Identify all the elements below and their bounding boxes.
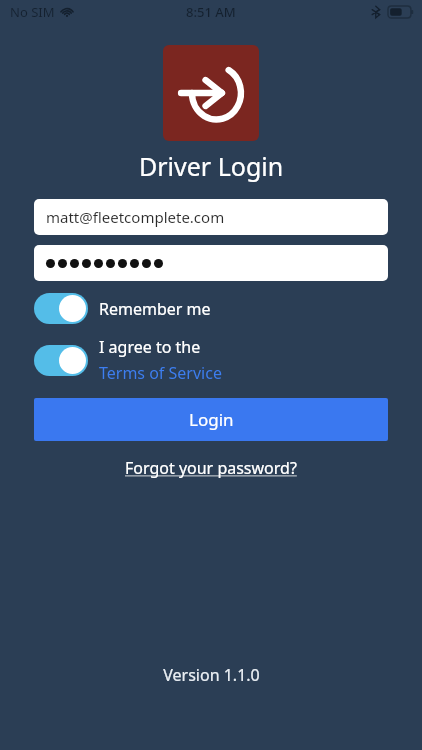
staticText: No SIM bbox=[10, 3, 55, 21]
staticText: I agree to the bbox=[99, 336, 201, 358]
staticText: matt@fleetcomplete.com bbox=[46, 207, 225, 227]
staticText: Forgot your password? bbox=[125, 457, 297, 479]
button[interactable]: matt@fleetcomplete.com bbox=[34, 199, 388, 235]
staticText: Remember me bbox=[99, 298, 211, 320]
button[interactable] bbox=[34, 245, 388, 281]
button[interactable]: Forgot your password? bbox=[119, 455, 303, 481]
button[interactable]: Login bbox=[34, 398, 388, 441]
button[interactable] bbox=[34, 345, 88, 376]
staticText: Driver Login bbox=[139, 149, 284, 183]
staticText: Version 1.1.0 bbox=[163, 664, 260, 686]
button[interactable]: Remember me bbox=[34, 293, 388, 324]
staticText: Terms of Service bbox=[99, 362, 222, 384]
staticText: Login bbox=[189, 408, 234, 431]
button[interactable]: Terms of Service bbox=[99, 362, 222, 384]
staticText: 8:51 AM bbox=[186, 3, 236, 21]
